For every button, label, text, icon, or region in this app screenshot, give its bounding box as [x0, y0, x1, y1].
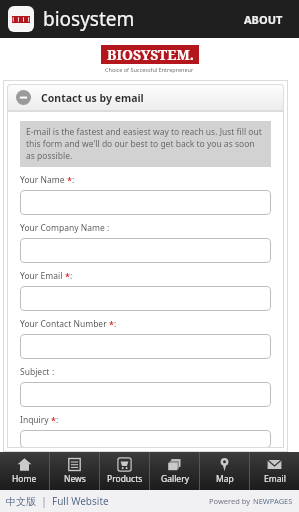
button[interactable]: Text input: [20, 334, 271, 359]
staticText: *: [67, 174, 72, 186]
staticText: :: [70, 270, 73, 282]
staticText: NEWPAGES: [253, 496, 293, 506]
staticText: *: [51, 414, 56, 426]
staticText: Your Company Name: [20, 222, 107, 234]
staticText: Full Website: [52, 494, 109, 508]
button[interactable]: Email: [250, 452, 299, 490]
staticText: 中文版: [6, 495, 36, 508]
staticText: E-mail is the fastest and easiest way to…: [26, 126, 265, 162]
staticText: :: [72, 174, 75, 186]
staticText: biosystem: [43, 6, 135, 32]
staticText: :: [52, 366, 55, 378]
staticText: Powered by: [209, 496, 253, 506]
button[interactable]: Text input: [20, 190, 271, 215]
staticText: BIOSYSTEM.: [107, 45, 194, 64]
button[interactable]: Products: [100, 452, 149, 490]
staticText: Your Email: [20, 270, 65, 282]
button[interactable]: ABOUT: [232, 4, 295, 35]
staticText: *: [109, 318, 114, 330]
staticText: ABOUT: [244, 12, 283, 27]
staticText: Email: [264, 473, 286, 485]
staticText: :: [107, 222, 110, 234]
staticText: Inquiry: [20, 414, 51, 426]
staticText: |: [36, 494, 52, 508]
button[interactable]: Home: [0, 452, 49, 490]
button[interactable]: Full Website: [52, 494, 109, 508]
button[interactable]: Map: [200, 452, 249, 490]
staticText: :: [114, 318, 117, 330]
staticText: Your Contact Number: [20, 318, 109, 330]
button[interactable]: Gallery: [150, 452, 199, 490]
button[interactable]: Text input: [20, 286, 271, 311]
staticText: Choice of Successful Entrepreneur: [105, 66, 194, 73]
staticText: Gallery: [161, 473, 189, 485]
other: Collapse section: [16, 90, 31, 105]
staticText: News: [64, 473, 86, 485]
button[interactable]: BIOSYSTEM logo: [101, 45, 199, 64]
button[interactable]: Text input: [20, 382, 271, 407]
button[interactable]: App logo: [8, 6, 34, 32]
staticText: Home: [12, 473, 37, 485]
staticText: Subject: [20, 366, 52, 378]
staticText: Your Name: [20, 174, 67, 186]
button[interactable]: News: [50, 452, 99, 490]
button[interactable]: Text input: [20, 238, 271, 263]
staticText: *: [65, 270, 70, 282]
button[interactable]: Collapse section: [7, 84, 284, 111]
button[interactable]: 中文版: [6, 495, 36, 508]
button[interactable]: Text input: [20, 430, 271, 448]
staticText: Map: [216, 473, 234, 485]
staticText: Contact us by email: [41, 91, 144, 105]
staticText: :: [56, 414, 59, 426]
staticText: Products: [107, 473, 143, 485]
